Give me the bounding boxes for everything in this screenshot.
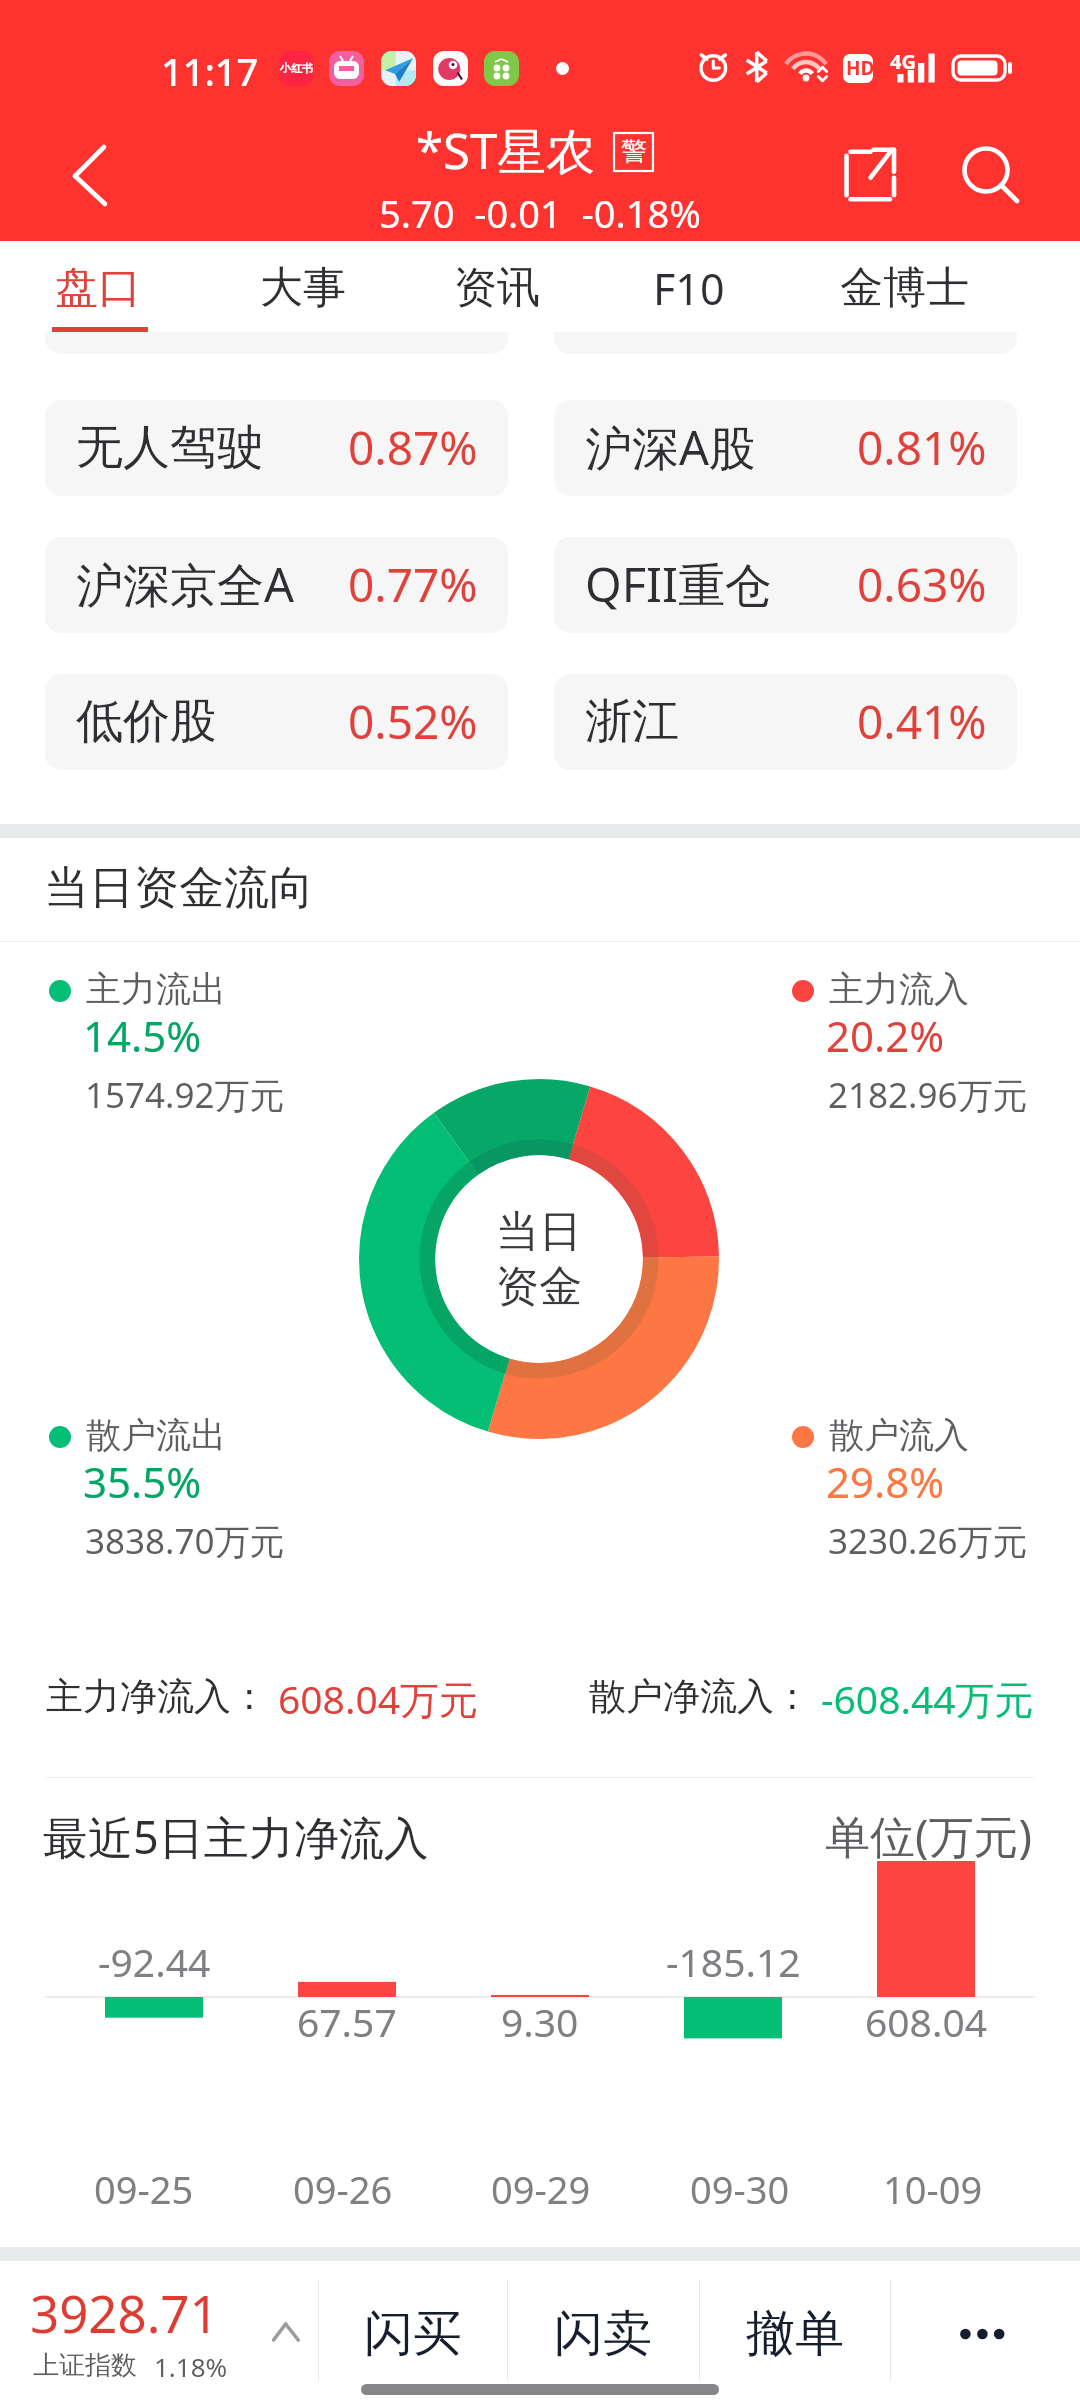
staticText: 3928.71 xyxy=(30,2278,219,2347)
staticText: HD xyxy=(846,55,875,81)
staticText: 0.87% xyxy=(348,416,478,479)
staticText: 上证指数 xyxy=(33,2349,137,2382)
staticText: 闪卖 xyxy=(554,2303,652,2365)
staticText: 3230.26万元 xyxy=(828,1517,1028,1565)
staticText: 1574.92万元 xyxy=(85,1071,285,1119)
staticText: 散户流出 xyxy=(86,1413,226,1457)
staticText: 0.77% xyxy=(348,553,478,616)
staticText: 沪深A股 xyxy=(585,415,757,479)
staticText: 0.52% xyxy=(348,690,478,753)
staticText: QFII重仓 xyxy=(585,552,772,616)
button[interactable]: 撤单 xyxy=(699,2261,890,2400)
staticText: 最近5日主力净流入 xyxy=(43,1806,429,1867)
staticText: 09-25 xyxy=(94,2163,194,2215)
staticText: 浙江 xyxy=(585,692,679,751)
button[interactable]: 无人驾驶 xyxy=(45,400,508,496)
staticText: 大事 xyxy=(260,261,346,315)
staticText: 14.5% xyxy=(83,1007,202,1064)
staticText: 9.30 xyxy=(501,1995,579,2048)
staticText: 当日 xyxy=(496,1205,582,1259)
button[interactable]: 低价股 xyxy=(45,674,508,770)
button[interactable]: F10 xyxy=(594,241,784,331)
button[interactable]: 沪深A股 xyxy=(554,400,1017,496)
staticText: 10-09 xyxy=(883,2163,983,2215)
staticText: 5.70 -0.01 -0.18% xyxy=(379,187,701,239)
staticText: 无人驾驶 xyxy=(76,418,264,477)
staticText: *ST星农 xyxy=(416,117,596,184)
staticText: 4G xyxy=(890,48,916,75)
staticText: 金博士 xyxy=(840,261,969,315)
staticText: 闪买 xyxy=(364,2303,462,2365)
staticText: 单位(万元) xyxy=(825,1805,1033,1866)
button[interactable]: 闪卖 xyxy=(507,2261,699,2400)
staticText: 散户流入 xyxy=(829,1413,969,1457)
button[interactable]: 当日 xyxy=(359,1079,719,1439)
staticText: 当日资金流向 xyxy=(44,860,314,917)
staticText: 0.63% xyxy=(857,553,987,616)
button[interactable]: 大事 xyxy=(208,241,398,331)
staticText: -185.12 xyxy=(666,1935,801,1988)
staticText: 沪深京全A xyxy=(76,552,295,616)
staticText: 主力流入 xyxy=(829,967,969,1011)
button[interactable]: QFII重仓 xyxy=(554,537,1017,633)
staticText: 11:17 xyxy=(161,45,259,97)
staticText: 主力流出 xyxy=(86,967,226,1011)
staticText: 1.18% xyxy=(154,2349,228,2384)
staticText: 35.5% xyxy=(83,1453,202,1510)
staticText: -92.44 xyxy=(98,1935,211,1988)
staticText: 0.41% xyxy=(857,690,987,753)
staticText: 67.57 xyxy=(297,1995,397,2048)
button[interactable]: 资讯 xyxy=(402,241,592,331)
staticText: 资金 xyxy=(496,1260,582,1314)
button[interactable]: 浙江 xyxy=(554,674,1017,770)
button[interactable]: Search xyxy=(940,120,1052,241)
button[interactable]: 沪深京全A xyxy=(45,537,508,633)
button[interactable]: More xyxy=(890,2261,1080,2400)
staticText: 09-26 xyxy=(293,2163,393,2215)
button[interactable]: 闪买 xyxy=(318,2261,507,2400)
staticText: 散户净流入： xyxy=(589,1673,811,1720)
staticText: 低价股 xyxy=(76,692,217,751)
staticText: 撤单 xyxy=(746,2303,844,2365)
staticText: 盘口 xyxy=(55,261,141,315)
staticText: 0.81% xyxy=(857,416,987,479)
staticText: -608.44万元 xyxy=(821,1672,1034,1725)
staticText: F10 xyxy=(653,259,725,318)
staticText: 20.2% xyxy=(826,1007,945,1064)
staticText: 主力净流入： xyxy=(46,1673,268,1720)
staticText: 3838.70万元 xyxy=(85,1517,285,1565)
staticText: 小红书 xyxy=(280,61,313,75)
staticText: 警 xyxy=(621,135,647,168)
button[interactable]: Expand xyxy=(246,2261,318,2400)
staticText: 608.04万元 xyxy=(278,1672,478,1725)
staticText: 29.8% xyxy=(826,1453,945,1510)
staticText: 09-30 xyxy=(690,2163,790,2215)
button[interactable]: Back xyxy=(0,120,170,241)
staticText: 608.04 xyxy=(865,1995,987,2048)
staticText: 2182.96万元 xyxy=(828,1071,1028,1119)
button[interactable]: 金博士 xyxy=(809,241,999,331)
button[interactable]: Share xyxy=(815,120,927,241)
staticText: 资讯 xyxy=(454,261,540,315)
staticText: 09-29 xyxy=(491,2163,591,2215)
button[interactable]: 盘口 xyxy=(3,241,193,331)
